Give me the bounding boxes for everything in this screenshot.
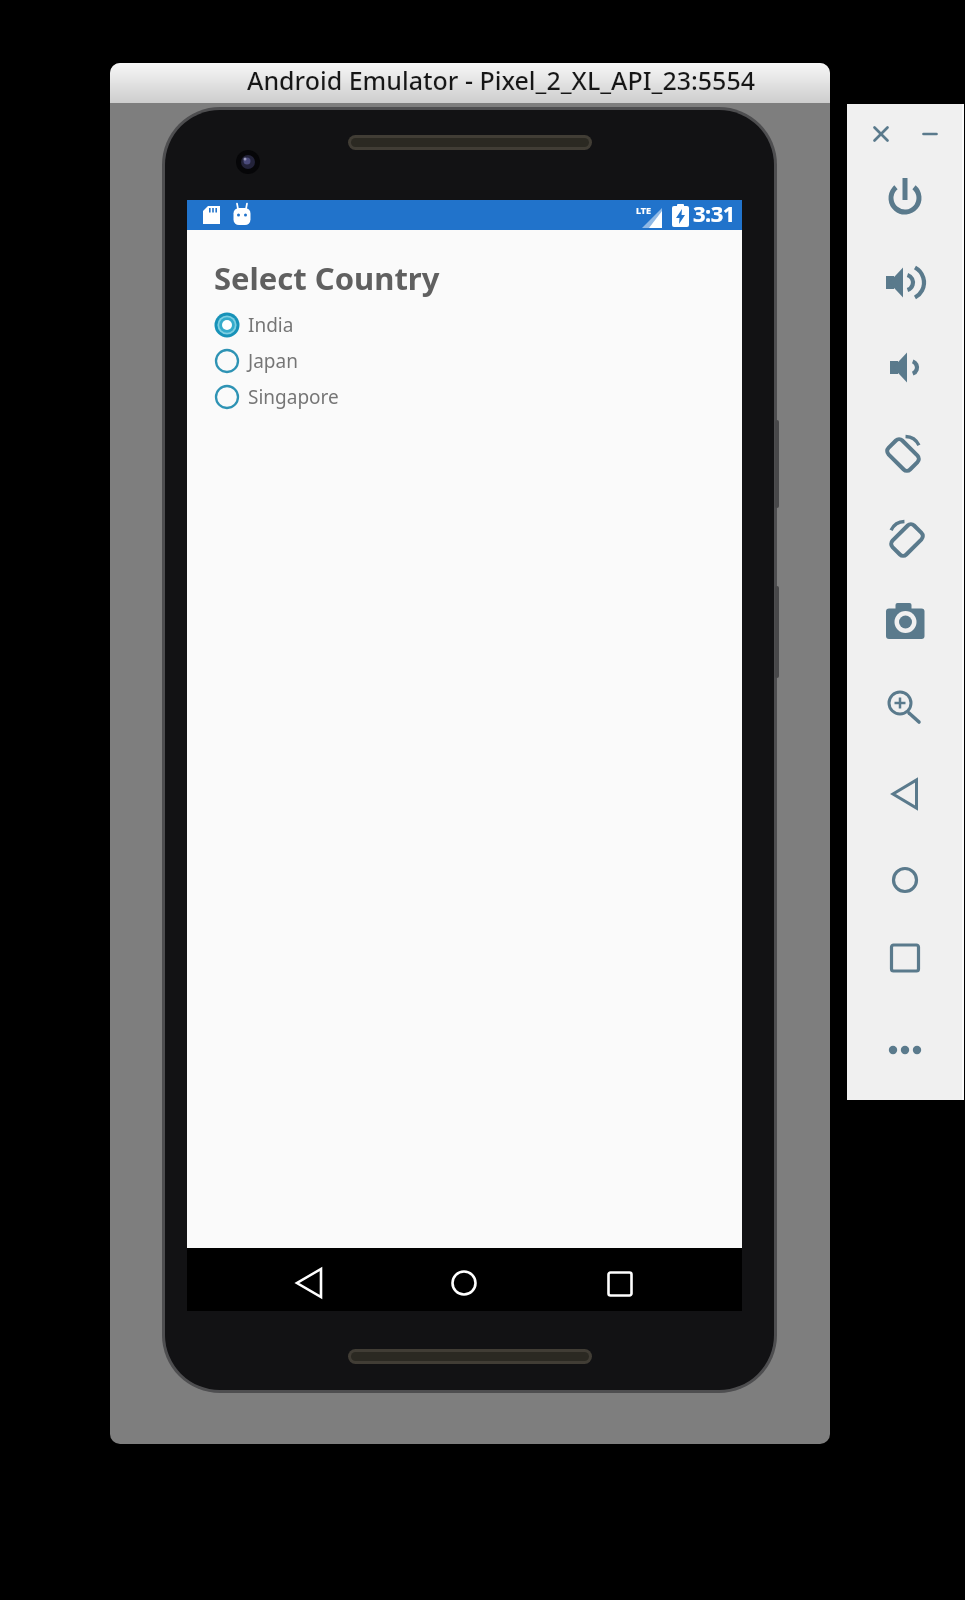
button[interactable]: Japan [214, 343, 414, 379]
button[interactable] [883, 936, 927, 980]
button[interactable] [442, 1261, 486, 1305]
staticText: India [248, 312, 294, 338]
button[interactable] [598, 1261, 642, 1305]
button[interactable] [883, 685, 927, 729]
staticText: Select Country [214, 257, 440, 299]
button[interactable] [883, 600, 927, 644]
staticText: Android Emulator - Pixel_2_XL_API_23:555… [247, 63, 756, 97]
staticText: 3:31 [693, 198, 735, 228]
staticText: Japan [248, 348, 298, 374]
button[interactable] [883, 1028, 927, 1072]
button[interactable] [883, 176, 927, 220]
button[interactable] [288, 1261, 332, 1305]
button[interactable] [883, 515, 927, 559]
button[interactable] [883, 858, 927, 902]
button[interactable]: Singapore [214, 379, 414, 415]
button[interactable] [859, 112, 903, 156]
button[interactable]: India [214, 307, 414, 343]
button[interactable] [883, 772, 927, 816]
staticText: Singapore [248, 384, 339, 410]
staticText: LTE [636, 204, 652, 216]
button[interactable] [908, 112, 952, 156]
button[interactable] [883, 345, 927, 389]
button[interactable] [883, 260, 927, 304]
button[interactable] [883, 430, 927, 474]
